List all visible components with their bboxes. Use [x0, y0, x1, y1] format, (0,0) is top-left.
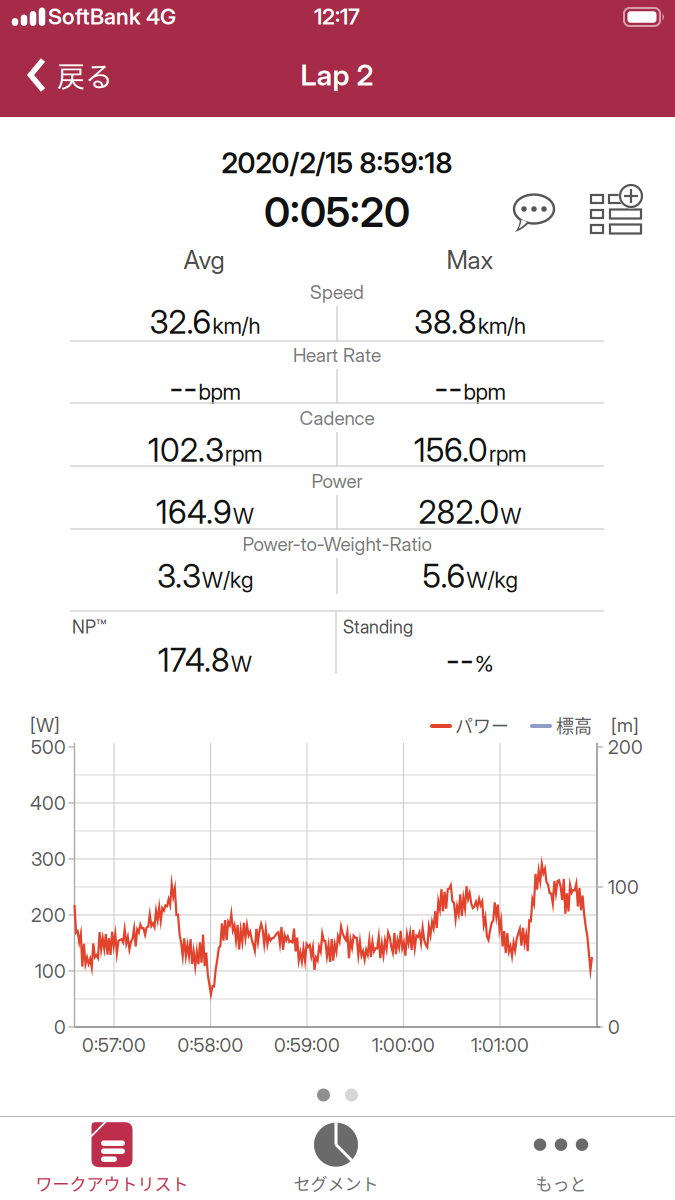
button[interactable]: もっと — [451, 1120, 671, 1196]
staticText: 38.8 — [414, 303, 477, 341]
staticText: 300 — [31, 847, 66, 870]
staticText: [m] — [611, 713, 639, 736]
staticText: -- — [446, 641, 474, 679]
staticText: パワー — [455, 712, 509, 738]
staticText: -- — [434, 369, 462, 407]
button[interactable]: ワークアウトリスト — [2, 1120, 222, 1196]
staticText: rpm — [489, 440, 526, 467]
staticText: W — [233, 502, 254, 529]
staticText: Power-to-Weight-Ratio — [242, 532, 431, 555]
staticText: 3.3 — [157, 557, 201, 595]
staticText: 156.0 — [414, 431, 488, 469]
staticText: 12:17 — [314, 3, 360, 30]
staticText: セグメント — [293, 1171, 378, 1195]
staticText: Avg — [183, 245, 224, 275]
button[interactable]: セグメント — [226, 1120, 446, 1196]
staticText: 102.3 — [148, 431, 224, 469]
staticText: 400 — [30, 791, 66, 814]
staticText: 1:01:00 — [471, 1033, 529, 1056]
staticText: もっと — [535, 1171, 586, 1195]
staticText: ワークアウトリスト — [35, 1171, 188, 1195]
staticText: 0 — [54, 1015, 66, 1038]
staticText: 0:58:00 — [177, 1033, 243, 1056]
staticText: Max — [446, 245, 493, 275]
staticText: 200 — [31, 903, 66, 926]
staticText: Heart Rate — [293, 343, 381, 366]
staticText: 282.0 — [418, 493, 499, 531]
staticText: 174.8 — [158, 641, 230, 679]
staticText: 200 — [608, 735, 643, 758]
staticText: 0:05:20 — [264, 187, 410, 237]
staticText: SoftBank 4G — [48, 3, 176, 30]
staticText: W/kg — [466, 566, 517, 593]
staticText: [W] — [30, 713, 60, 736]
staticText: 0 — [608, 1015, 620, 1038]
button[interactable]: Comments — [513, 194, 555, 234]
staticText: rpm — [225, 440, 262, 467]
staticText: 0:57:00 — [82, 1033, 146, 1056]
staticText: % — [475, 650, 494, 677]
button[interactable]: 戻る — [7, 40, 125, 110]
staticText: 0:59:00 — [274, 1033, 340, 1056]
staticText: 164.9 — [156, 493, 232, 531]
staticText: Speed — [310, 280, 364, 303]
staticText: 戻る — [57, 55, 113, 95]
staticText: W — [231, 650, 252, 677]
staticText: 5.6 — [422, 557, 465, 595]
staticText: Power — [311, 469, 362, 492]
staticText: Lap 2 — [300, 57, 373, 93]
staticText: km/h — [212, 312, 260, 339]
staticText: W — [500, 502, 521, 529]
staticText: 500 — [31, 735, 66, 758]
staticText: 2020/2/15 8:59:18 — [221, 146, 452, 180]
button[interactable]: Add to list — [590, 193, 644, 235]
staticText: -- — [169, 369, 197, 407]
staticText: bpm — [198, 378, 240, 405]
staticText: NP™ — [72, 616, 106, 638]
staticText: 32.6 — [149, 303, 211, 341]
staticText: bpm — [463, 378, 505, 405]
staticText: W/kg — [202, 566, 253, 593]
staticText: 1:00:00 — [372, 1033, 435, 1056]
staticText: Cadence — [299, 406, 374, 429]
staticText: 標高 — [556, 712, 592, 738]
staticText: 100 — [608, 875, 639, 898]
staticText: 100 — [35, 959, 66, 982]
staticText: Standing — [343, 616, 413, 638]
staticText: km/h — [478, 312, 526, 339]
